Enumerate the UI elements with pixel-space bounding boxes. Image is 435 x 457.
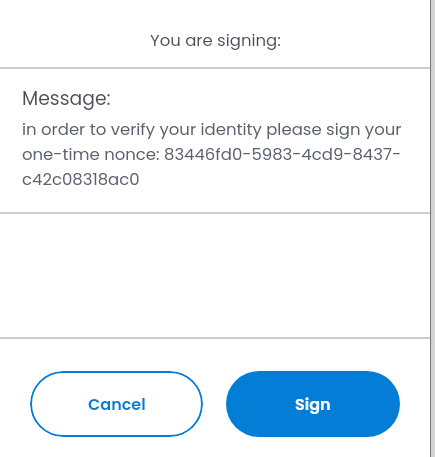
button[interactable]: Sign <box>226 371 400 437</box>
staticText: Cancel <box>88 393 146 415</box>
staticText: You are signing: <box>150 29 281 52</box>
staticText: in order to verify your identity please … <box>22 118 410 191</box>
staticText: Message: <box>22 85 111 111</box>
staticText: Sign <box>295 393 331 415</box>
button[interactable]: Cancel <box>30 371 203 437</box>
